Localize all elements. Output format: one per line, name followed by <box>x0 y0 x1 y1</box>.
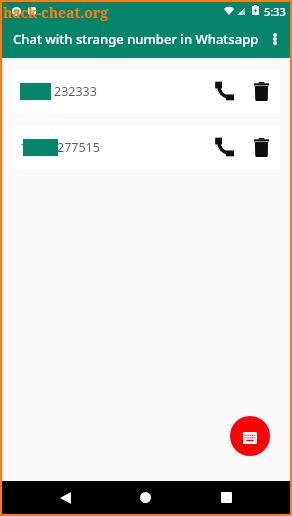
staticText: 5:33 <box>264 4 286 19</box>
staticText: 277515 <box>57 139 100 156</box>
button[interactable]: Call <box>209 132 239 162</box>
button[interactable]: Call <box>209 76 239 106</box>
button[interactable]: Open keyboard <box>230 416 270 456</box>
button[interactable]: Home <box>123 481 167 514</box>
staticText: 232333 <box>54 83 97 100</box>
button[interactable]: Recent apps <box>205 481 247 514</box>
staticText: hack-cheat.org <box>3 3 109 22</box>
staticText: 1 <box>20 139 28 156</box>
button[interactable]: More options <box>260 24 290 54</box>
button[interactable]: Back <box>44 481 86 514</box>
button[interactable]: Delete <box>248 76 278 106</box>
button[interactable]: Delete <box>248 132 278 162</box>
button[interactable]: 1 <box>12 125 280 169</box>
button[interactable]: 232333 <box>12 69 280 113</box>
staticText: Chat with strange number in Whatsapp <box>13 30 259 48</box>
